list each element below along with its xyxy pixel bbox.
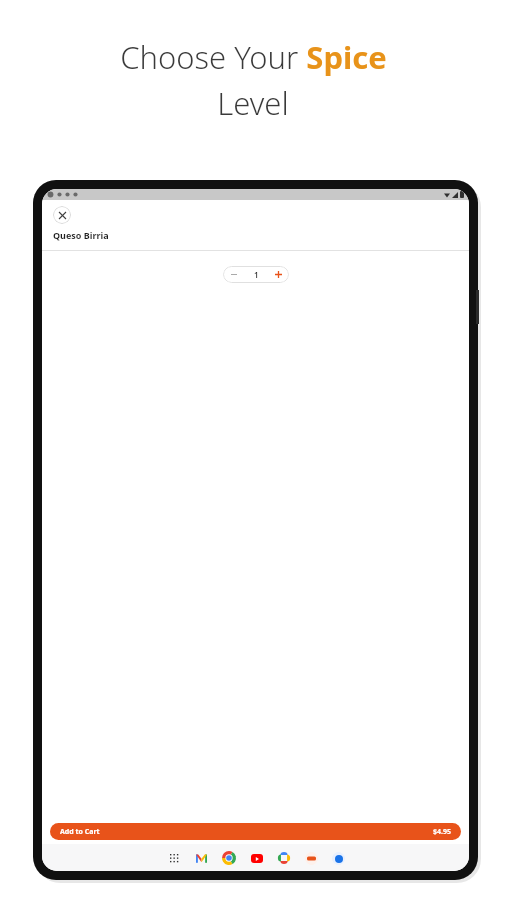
staticText: 1 — [254, 269, 259, 280]
button[interactable]: Food app — [304, 851, 318, 865]
button[interactable]: YouTube — [250, 851, 264, 865]
button[interactable]: All apps — [167, 851, 181, 865]
button[interactable]: Decrease quantity — [223, 266, 245, 283]
staticText: $4.95 — [433, 827, 451, 837]
button[interactable]: Add to Cart — [50, 823, 461, 840]
button[interactable]: Google Photos — [277, 851, 291, 865]
button[interactable]: Close — [53, 206, 71, 224]
staticText: Queso Birria — [53, 229, 109, 241]
button[interactable]: Chrome — [221, 850, 237, 866]
button[interactable]: Messages — [331, 851, 345, 865]
button[interactable]: Increase quantity — [267, 266, 289, 283]
staticText: Choose Your Spice — [120, 36, 387, 78]
button[interactable]: Gmail — [194, 851, 208, 865]
staticText: Add to Cart — [60, 827, 100, 837]
staticText: Level — [217, 82, 289, 124]
